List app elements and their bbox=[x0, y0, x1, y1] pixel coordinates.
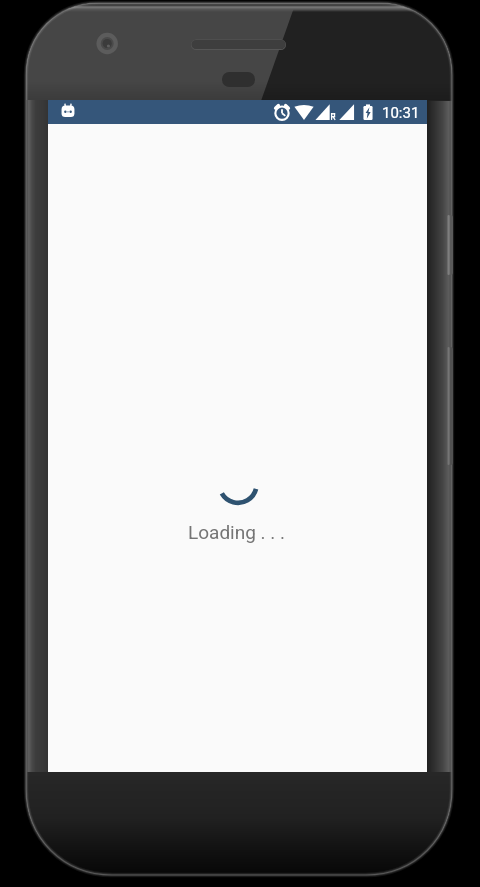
other: Notification bbox=[61, 103, 75, 119]
staticText: Loading . . . bbox=[188, 521, 286, 543]
staticText: 10:31 bbox=[382, 104, 420, 122]
